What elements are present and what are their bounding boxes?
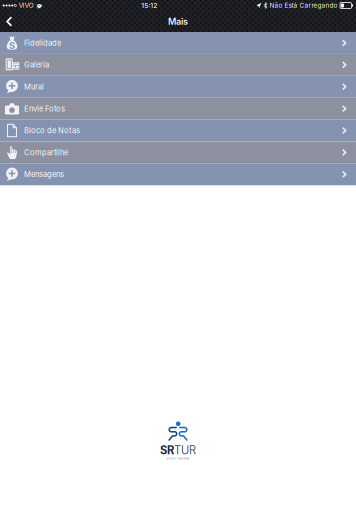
staticText: Mural — [24, 82, 44, 91]
button[interactable]: Mural — [0, 76, 356, 98]
button[interactable]: S — [0, 32, 356, 54]
staticText: Envie Fotos — [24, 104, 65, 113]
staticText: TUR — [174, 443, 196, 457]
button[interactable]: Mensagens — [0, 163, 356, 185]
staticText: Compartilhe — [24, 148, 68, 157]
staticText: VIVER TURISMO — [166, 457, 189, 460]
staticText: Bloco de Notas — [24, 126, 80, 135]
button[interactable]: Galeria — [0, 54, 356, 76]
staticText: Fidelidade — [24, 38, 61, 48]
staticText: S — [9, 40, 15, 51]
button[interactable]: Compartilhe — [0, 141, 356, 163]
button[interactable]: Envie Fotos — [0, 98, 356, 120]
staticText: Galeria — [24, 60, 49, 69]
staticText: Não Está Carregando — [270, 2, 338, 9]
button[interactable]: Back — [0, 11, 21, 32]
staticText: Mais — [168, 16, 188, 27]
staticText: SR — [160, 443, 174, 457]
staticText: Mensagens — [24, 170, 64, 179]
staticText: VIVO — [19, 2, 34, 9]
button[interactable]: Bloco de Notas — [0, 120, 356, 141]
staticText: 15:12 — [141, 1, 157, 10]
